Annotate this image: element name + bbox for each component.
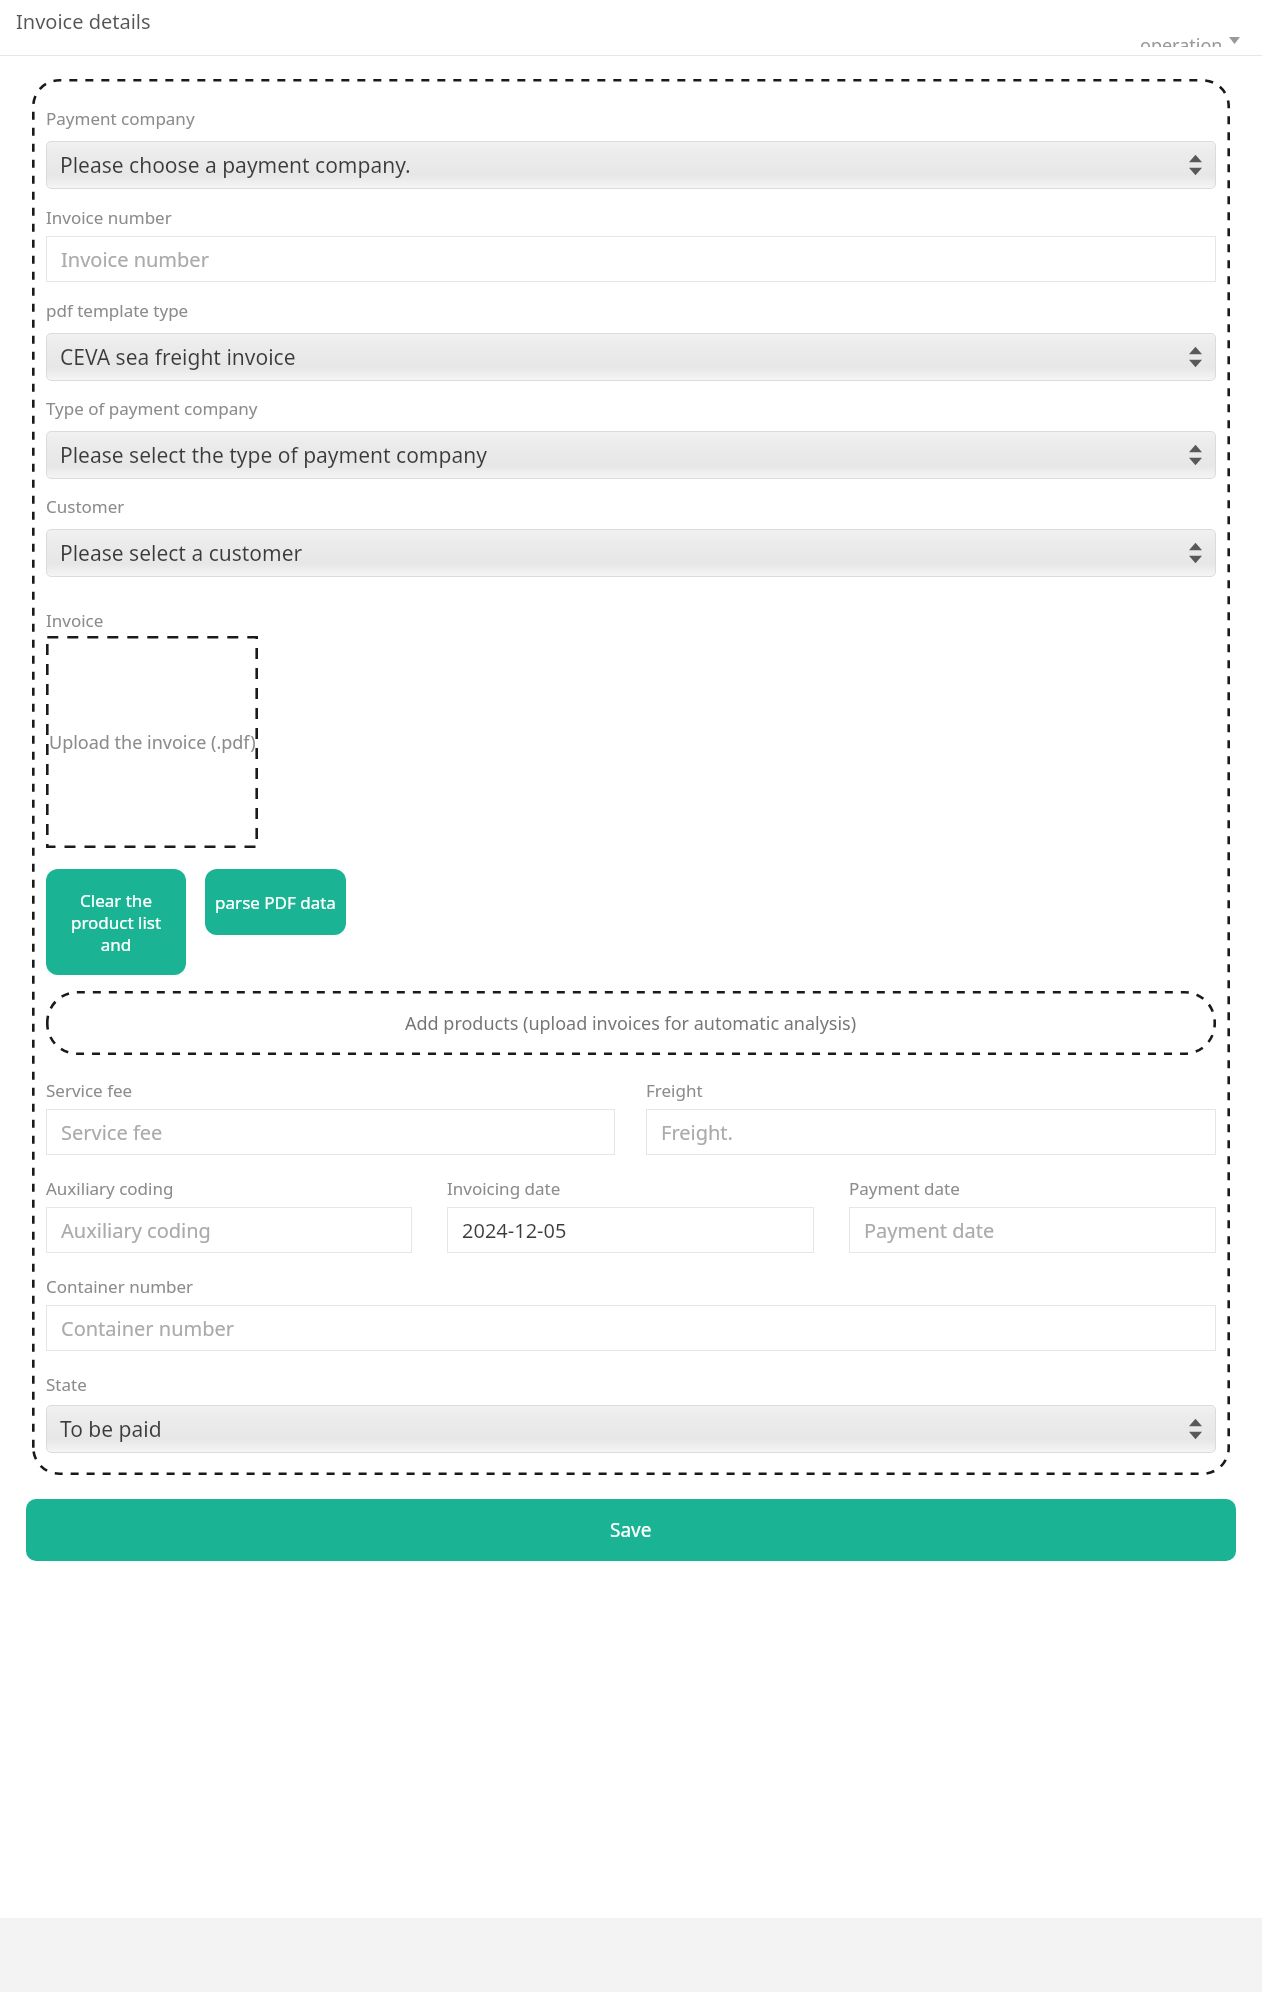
staticText: Add products (upload invoices for automa…	[405, 1011, 857, 1036]
button[interactable]: Freight.	[646, 1109, 1216, 1155]
staticText: Auxiliary coding	[46, 1177, 174, 1200]
staticText: Please select the type of payment compan…	[60, 441, 487, 470]
button[interactable]: Upload the invoice (.pdf)	[46, 636, 258, 848]
staticText: Invoice number	[61, 246, 209, 273]
button[interactable]: operation	[1140, 33, 1240, 47]
button[interactable]: Clear the product list and	[46, 869, 186, 975]
staticText: Clear the product list and	[54, 889, 178, 956]
button[interactable]: Save	[26, 1499, 1236, 1561]
staticText: Upload the invoice (.pdf)	[49, 730, 256, 755]
button[interactable]: Please select the type of payment compan…	[46, 431, 1216, 479]
button[interactable]: Container number	[46, 1305, 1216, 1351]
staticText: Please choose a payment company.	[60, 151, 411, 180]
staticText: operation	[1140, 33, 1223, 47]
button[interactable]: parse PDF data	[205, 869, 346, 935]
staticText: To be paid	[60, 1415, 162, 1444]
staticText: Please select a customer	[60, 539, 303, 568]
staticText: Payment date	[849, 1177, 960, 1200]
staticText: Payment company	[46, 107, 195, 130]
staticText: Freight.	[661, 1119, 733, 1146]
staticText: pdf template type	[46, 299, 189, 322]
staticText: Container number	[61, 1315, 235, 1342]
staticText: Type of payment company	[46, 397, 258, 420]
button[interactable]: Auxiliary coding	[46, 1207, 412, 1253]
button[interactable]: Service fee	[46, 1109, 615, 1155]
staticText: Invoice number	[46, 206, 172, 229]
staticText: Customer	[46, 495, 125, 518]
staticText: Container number	[46, 1275, 194, 1298]
staticText: 2024-12-05	[462, 1217, 567, 1244]
button[interactable]: To be paid	[46, 1405, 1216, 1453]
staticText: CEVA sea freight invoice	[60, 343, 296, 372]
staticText: Save	[610, 1517, 652, 1543]
staticText: Auxiliary coding	[61, 1217, 211, 1244]
button[interactable]: Add products (upload invoices for automa…	[46, 991, 1216, 1055]
staticText: Invoice	[46, 609, 104, 632]
button[interactable]: Please choose a payment company.	[46, 141, 1216, 189]
staticText: Service fee	[61, 1119, 163, 1146]
button[interactable]: CEVA sea freight invoice	[46, 333, 1216, 381]
staticText: Invoicing date	[447, 1177, 561, 1200]
button[interactable]: Invoice number	[46, 236, 1216, 282]
staticText: Service fee	[46, 1079, 133, 1102]
staticText: State	[46, 1373, 87, 1396]
other: Open operation menu	[1229, 37, 1240, 44]
button[interactable]: Payment date	[849, 1207, 1216, 1253]
staticText: Freight	[646, 1079, 703, 1102]
button[interactable]: 2024-12-05	[447, 1207, 814, 1253]
button[interactable]: Please select a customer	[46, 529, 1216, 577]
staticText: Invoice details	[16, 8, 151, 33]
staticText: parse PDF data	[215, 891, 336, 914]
staticText: Payment date	[864, 1217, 995, 1244]
